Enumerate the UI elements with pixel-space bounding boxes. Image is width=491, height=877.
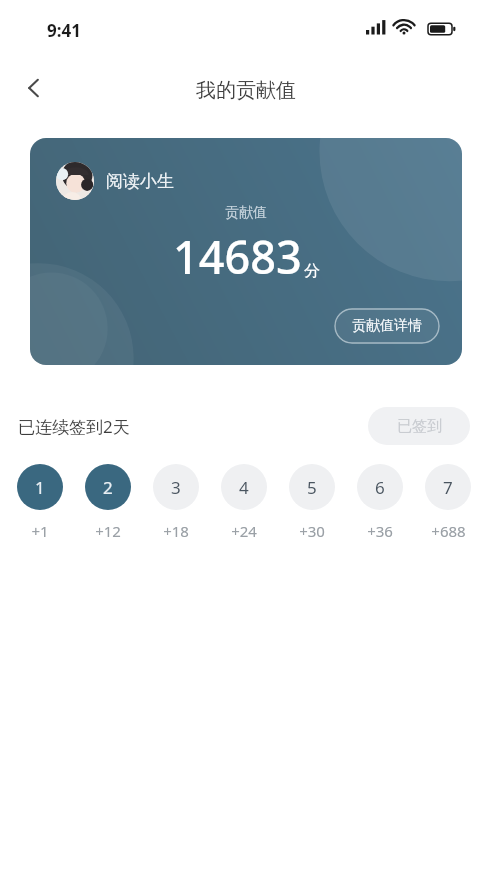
staticText: +1: [31, 521, 49, 541]
button[interactable]: 3: [153, 464, 199, 510]
staticText: 分: [304, 261, 320, 281]
button[interactable]: 4: [221, 464, 267, 510]
staticText: +30: [299, 521, 325, 541]
staticText: 阅读小生: [106, 171, 174, 192]
staticText: 贡献值详情: [352, 317, 422, 335]
staticText: 已连续签到2天: [18, 415, 130, 438]
staticText: 5: [307, 476, 317, 499]
button[interactable]: 7: [425, 464, 471, 510]
staticText: +36: [367, 521, 393, 541]
button[interactable]: 1: [17, 464, 63, 510]
staticText: 7: [443, 476, 453, 499]
staticText: 6: [375, 476, 385, 499]
staticText: +688: [431, 521, 466, 541]
button[interactable]: 已签到: [368, 407, 470, 445]
button[interactable]: 阅读小生: [30, 138, 462, 365]
staticText: 4: [239, 476, 249, 499]
staticText: 3: [171, 476, 181, 499]
staticText: 9:41: [47, 19, 81, 42]
staticText: 1: [35, 476, 45, 499]
button[interactable]: 贡献值详情: [334, 308, 440, 344]
staticText: +18: [163, 521, 189, 541]
button[interactable]: 5: [289, 464, 335, 510]
staticText: 2: [103, 476, 113, 499]
staticText: +12: [95, 521, 121, 541]
staticText: +24: [231, 521, 257, 541]
button[interactable]: 2: [85, 464, 131, 510]
staticText: 14683: [173, 226, 302, 287]
staticText: 贡献值: [225, 204, 267, 222]
button[interactable]: 6: [357, 464, 403, 510]
staticText: 已签到: [397, 417, 442, 436]
button[interactable]: Back: [8, 62, 60, 114]
staticText: 我的贡献值: [196, 78, 296, 103]
